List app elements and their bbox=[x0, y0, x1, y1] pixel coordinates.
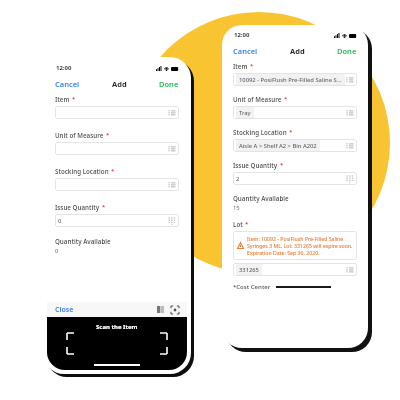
staticText: *Cost Center bbox=[233, 283, 271, 291]
staticText: Aisle A > Shelf A2 > Bin A202 bbox=[239, 142, 317, 150]
button[interactable]: 10092 - PosiFlush Pre-Filled Saline Syr.… bbox=[233, 73, 357, 86]
staticText: Cancel bbox=[55, 79, 80, 89]
button[interactable]: 0 bbox=[55, 214, 179, 227]
button[interactable]: Flash bbox=[157, 306, 164, 313]
staticText: * bbox=[111, 167, 115, 175]
staticText: * bbox=[106, 131, 110, 139]
staticText: Unit of Measure bbox=[233, 95, 282, 103]
button[interactable] bbox=[55, 106, 179, 119]
staticText: * bbox=[280, 161, 284, 169]
button[interactable]: 2 bbox=[233, 172, 357, 185]
staticText: Quantity Available bbox=[233, 194, 289, 202]
staticText: 15 bbox=[233, 204, 240, 212]
staticText: Syringes 3 ML. Lot: 331265 will expire s… bbox=[247, 242, 353, 249]
staticText: Expiration Date: Sep 30, 2020. bbox=[247, 249, 320, 256]
staticText: Done bbox=[159, 79, 179, 89]
staticText: Tray bbox=[239, 109, 251, 117]
button[interactable]: Aisle A > Shelf A2 > Bin A202 bbox=[233, 139, 357, 152]
staticText: * bbox=[250, 62, 254, 70]
button[interactable]: Tray bbox=[233, 106, 357, 119]
staticText: Issue Quantity bbox=[233, 161, 278, 169]
staticText: 12:00 bbox=[56, 64, 72, 72]
staticText: Unit of Measure bbox=[55, 131, 104, 139]
button[interactable]: Cancel bbox=[55, 79, 80, 89]
staticText: 0 bbox=[55, 247, 59, 255]
staticText: Stocking Location bbox=[233, 128, 287, 136]
staticText: Add bbox=[112, 79, 127, 89]
staticText: Scan the Item bbox=[96, 323, 138, 331]
staticText: 2 bbox=[236, 175, 240, 183]
staticText: Done bbox=[337, 46, 357, 56]
staticText: Quantity Available bbox=[55, 237, 111, 245]
button[interactable] bbox=[55, 178, 179, 191]
staticText: * bbox=[245, 220, 249, 228]
button[interactable] bbox=[55, 142, 179, 155]
staticText: Cancel bbox=[233, 46, 258, 56]
button[interactable]: Scan bbox=[171, 306, 179, 314]
staticText: 10092 - PosiFlush Pre-Filled Saline Syr.… bbox=[239, 76, 342, 84]
staticText: Issue Quantity bbox=[55, 203, 100, 211]
button[interactable]: Done bbox=[159, 79, 179, 89]
button[interactable]: Cancel bbox=[233, 46, 258, 56]
staticText: Item: 10092 - PosiFlush Pre-Filled Salin… bbox=[247, 235, 344, 242]
staticText: Item bbox=[55, 95, 70, 103]
button[interactable]: Done bbox=[337, 46, 357, 56]
staticText: * bbox=[284, 95, 288, 103]
button[interactable]: 331265 bbox=[233, 263, 357, 276]
staticText: 12:00 bbox=[234, 31, 250, 39]
staticText: * bbox=[289, 128, 293, 136]
staticText: 0 bbox=[58, 217, 62, 225]
staticText: * bbox=[72, 95, 76, 103]
staticText: Close bbox=[55, 305, 74, 315]
staticText: Stocking Location bbox=[55, 167, 109, 175]
staticText: 331265 bbox=[239, 266, 259, 274]
staticText: * bbox=[102, 203, 106, 211]
staticText: Lot bbox=[233, 220, 243, 228]
staticText: Item bbox=[233, 62, 248, 70]
button[interactable]: Close bbox=[55, 305, 74, 315]
staticText: Add bbox=[290, 46, 305, 56]
